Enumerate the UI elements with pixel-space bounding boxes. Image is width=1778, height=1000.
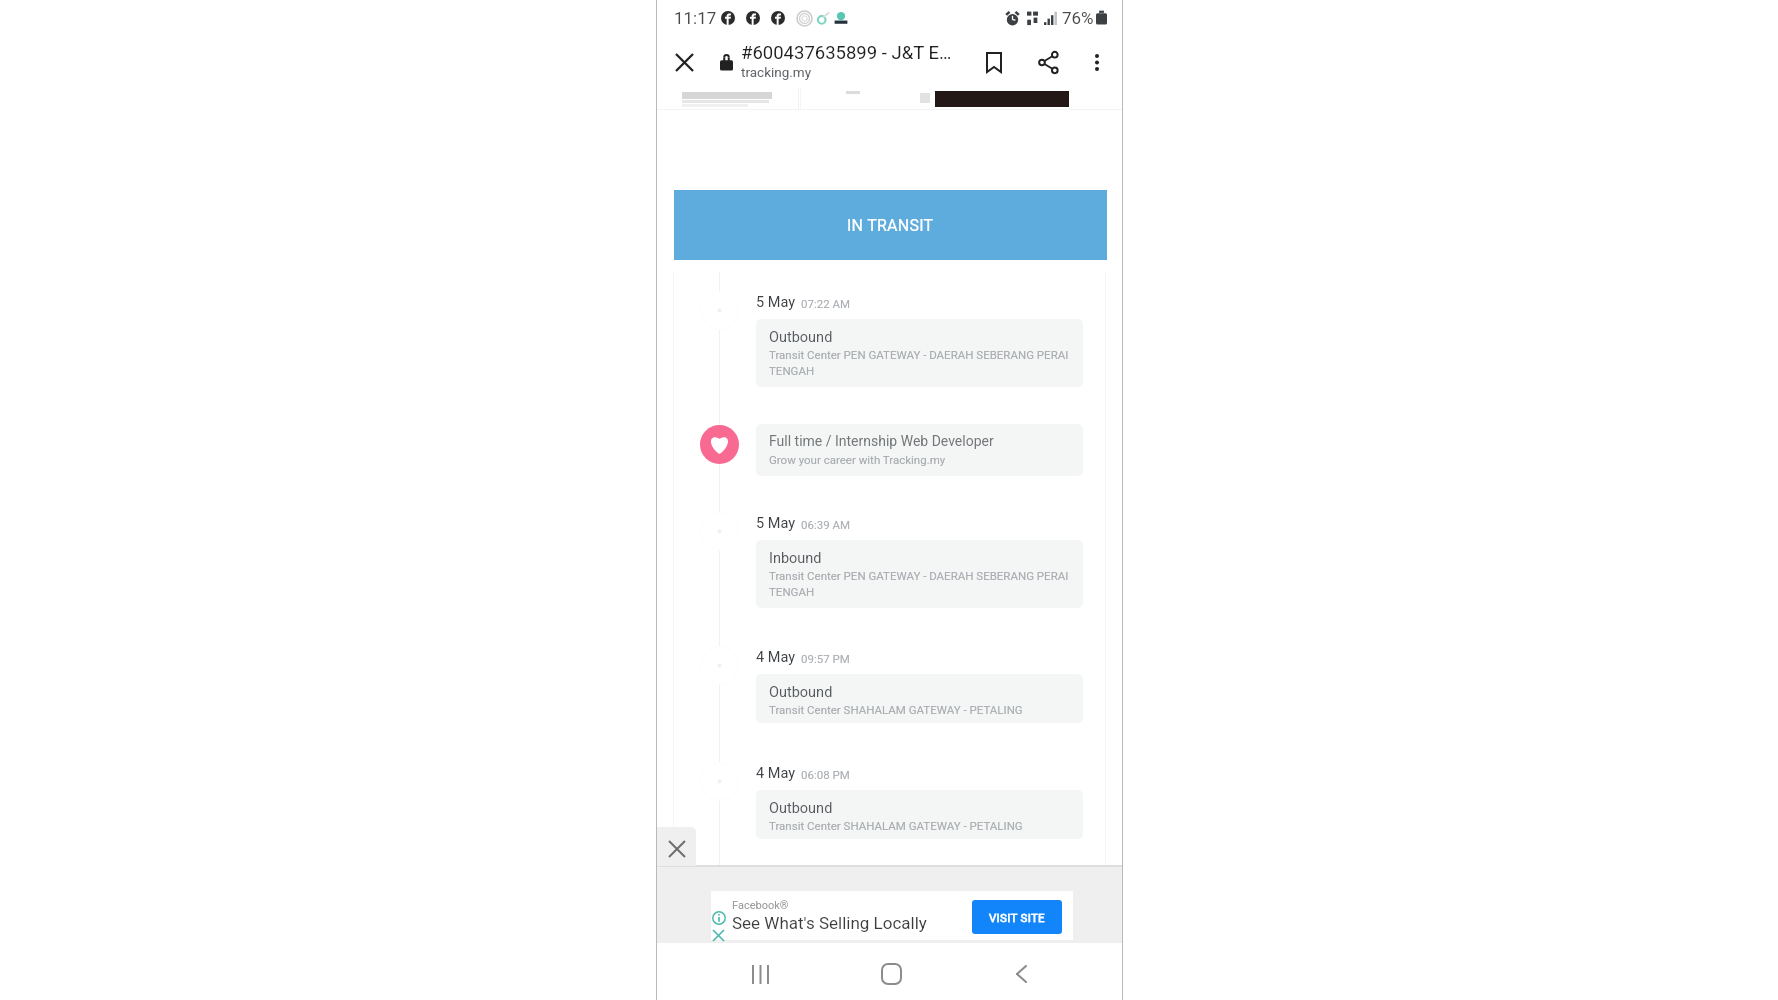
button[interactable]: Back (994, 947, 1048, 1000)
staticText: Outbound (769, 684, 833, 701)
button[interactable]: Outbound (756, 790, 1083, 839)
staticText: Outbound (769, 800, 833, 817)
staticText: 76% (1062, 8, 1094, 28)
staticText: VISIT SITE (989, 911, 1045, 924)
staticText: Full time / Internship Web Developer (769, 433, 994, 449)
button[interactable]: Inbound (756, 540, 1083, 608)
button[interactable]: IN TRANSIT (674, 190, 1107, 260)
staticText: IN TRANSIT (847, 216, 934, 235)
staticText: Grow your career with Tracking.my (769, 453, 946, 466)
staticText: Outbound (769, 329, 833, 346)
staticText: 4 May (756, 649, 796, 666)
staticText: 06:39 AM (801, 518, 851, 531)
button[interactable]: Home (864, 947, 918, 1000)
button[interactable]: Share (1024, 38, 1072, 86)
button[interactable]: Outbound (756, 674, 1083, 723)
button[interactable]: Ad info (712, 911, 726, 925)
button[interactable]: Bookmark (970, 38, 1018, 86)
button[interactable]: Close page (657, 827, 696, 866)
button[interactable]: Recents (733, 947, 787, 1000)
button[interactable]: Close (660, 38, 708, 86)
staticText: 07:22 AM (801, 297, 851, 310)
staticText: 06:08 PM (801, 768, 850, 781)
staticText: 5 May (756, 294, 796, 311)
staticText: #600437635899 - J&T E… (741, 42, 952, 64)
staticText: Transit Center SHAHALAM GATEWAY - PETALI… (769, 819, 1074, 832)
staticText: tracking.my (741, 64, 812, 80)
button[interactable]: Full time / Internship Web Developer (756, 424, 1083, 476)
button[interactable]: Close ad (713, 930, 724, 941)
staticText: Facebook® (732, 899, 789, 912)
staticText: See What's Selling Locally (732, 913, 927, 933)
staticText: 09:57 PM (801, 652, 850, 665)
button[interactable]: Outbound (756, 319, 1083, 387)
staticText: Transit Center PEN GATEWAY - DAERAH SEBE… (769, 348, 1074, 378)
staticText: 4 May (756, 765, 796, 782)
staticText: Transit Center SHAHALAM GATEWAY - PETALI… (769, 703, 1074, 716)
button[interactable]: More options (1073, 38, 1121, 86)
staticText: Inbound (769, 550, 822, 567)
staticText: Transit Center PEN GATEWAY - DAERAH SEBE… (769, 569, 1074, 599)
button[interactable]: Facebook® (711, 891, 1073, 940)
button[interactable]: VISIT SITE (972, 900, 1062, 934)
staticText: 11:17 (674, 8, 717, 28)
staticText: 5 May (756, 515, 796, 532)
